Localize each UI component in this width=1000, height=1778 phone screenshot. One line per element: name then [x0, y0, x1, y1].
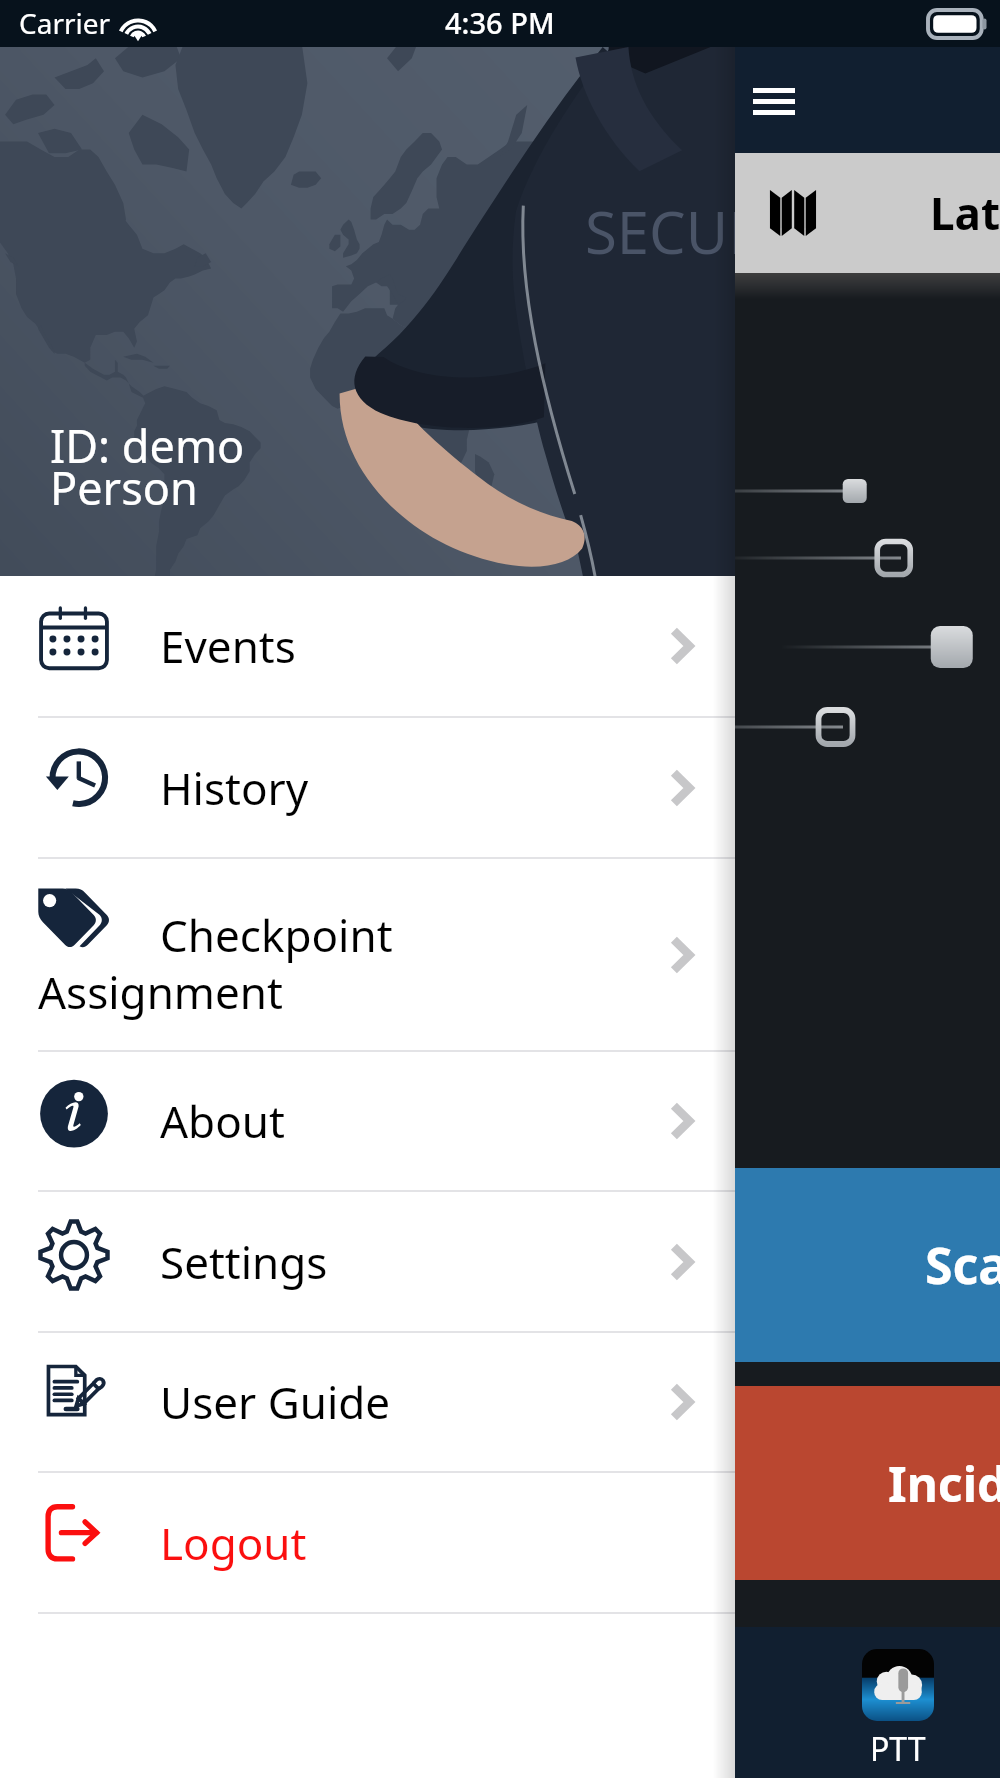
staticText: Latest — [930, 183, 1000, 243]
staticText: History — [160, 758, 309, 818]
staticText: Assignment — [38, 962, 283, 1022]
staticText: Events — [160, 616, 296, 676]
staticText: About — [160, 1091, 285, 1151]
button[interactable]: Checkpoint — [0, 859, 735, 1050]
staticText: 4:36 PM — [445, 3, 555, 42]
staticText: Logout — [160, 1513, 307, 1573]
button[interactable]: PTT — [862, 1649, 934, 1771]
staticText: SECURITY — [585, 192, 735, 271]
button[interactable]: Settings — [0, 1192, 735, 1331]
button[interactable]: Open navigation menu — [735, 67, 813, 135]
staticText: ID: demo — [50, 415, 245, 476]
staticText: User Guide — [160, 1372, 391, 1432]
staticText: PTT — [870, 1727, 926, 1771]
button[interactable]: User Guide — [0, 1333, 735, 1471]
staticText: Checkpoint — [160, 905, 393, 965]
button[interactable]: Incident — [0, 1386, 1000, 1580]
staticText: Scan — [925, 1231, 1000, 1299]
staticText: Carrier — [19, 4, 111, 42]
button[interactable]: Logout — [0, 1473, 735, 1612]
button[interactable]: Events — [0, 576, 735, 716]
staticText: Incident — [888, 1451, 1000, 1516]
button[interactable]: History — [0, 718, 735, 857]
staticText: Person — [50, 457, 198, 518]
button[interactable]: About — [0, 1052, 735, 1190]
button[interactable]: Scan — [0, 1168, 1000, 1362]
button[interactable]: Latest — [0, 153, 1000, 273]
staticText: Settings — [160, 1232, 328, 1292]
